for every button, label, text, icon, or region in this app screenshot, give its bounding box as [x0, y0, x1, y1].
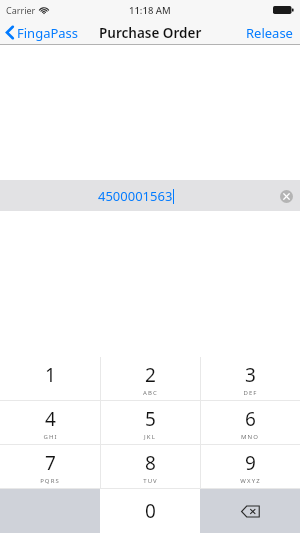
button[interactable]: FingaPass	[0, 20, 85, 45]
button[interactable]: 4500001563	[0, 180, 300, 211]
staticText: 7	[45, 450, 56, 476]
button[interactable]: 1	[0, 357, 100, 401]
staticText: ABC	[143, 389, 158, 397]
staticText: PQRS	[40, 477, 60, 485]
staticText: 4	[45, 406, 56, 432]
staticText: 2	[145, 362, 156, 388]
button[interactable]: Delete	[200, 489, 300, 533]
button[interactable]: 4	[0, 401, 100, 445]
staticText: 4500001563	[98, 187, 173, 205]
staticText: WXYZ	[240, 477, 261, 485]
button[interactable]: 6	[200, 401, 300, 445]
button[interactable]: 8	[100, 445, 200, 489]
button[interactable]: 9	[200, 445, 300, 489]
button[interactable]: 0	[100, 489, 200, 533]
staticText: Purchase Order	[99, 24, 202, 42]
staticText: 9	[245, 450, 256, 476]
staticText: Carrier	[6, 4, 36, 16]
staticText: 6	[245, 406, 256, 432]
staticText: TUV	[143, 477, 158, 485]
staticText: 1	[45, 362, 56, 388]
button[interactable]: Clear text	[272, 182, 300, 210]
staticText: FingaPass	[17, 24, 79, 42]
staticText: GHI	[43, 433, 58, 441]
button[interactable]: 7	[0, 445, 100, 489]
button[interactable]: 3	[200, 357, 300, 401]
staticText: 11:18 AM	[129, 4, 171, 17]
staticText: DEF	[243, 389, 258, 397]
staticText: 8	[145, 450, 156, 476]
staticText: 0	[145, 498, 156, 524]
button[interactable]: 5	[100, 401, 200, 445]
button[interactable]: 2	[100, 357, 200, 401]
staticText: Release	[246, 24, 293, 42]
staticText: JKL	[144, 433, 156, 441]
button[interactable]: Release	[239, 20, 300, 45]
staticText: 3	[245, 362, 256, 388]
staticText: 5	[145, 406, 156, 432]
staticText: MNO	[241, 433, 259, 441]
